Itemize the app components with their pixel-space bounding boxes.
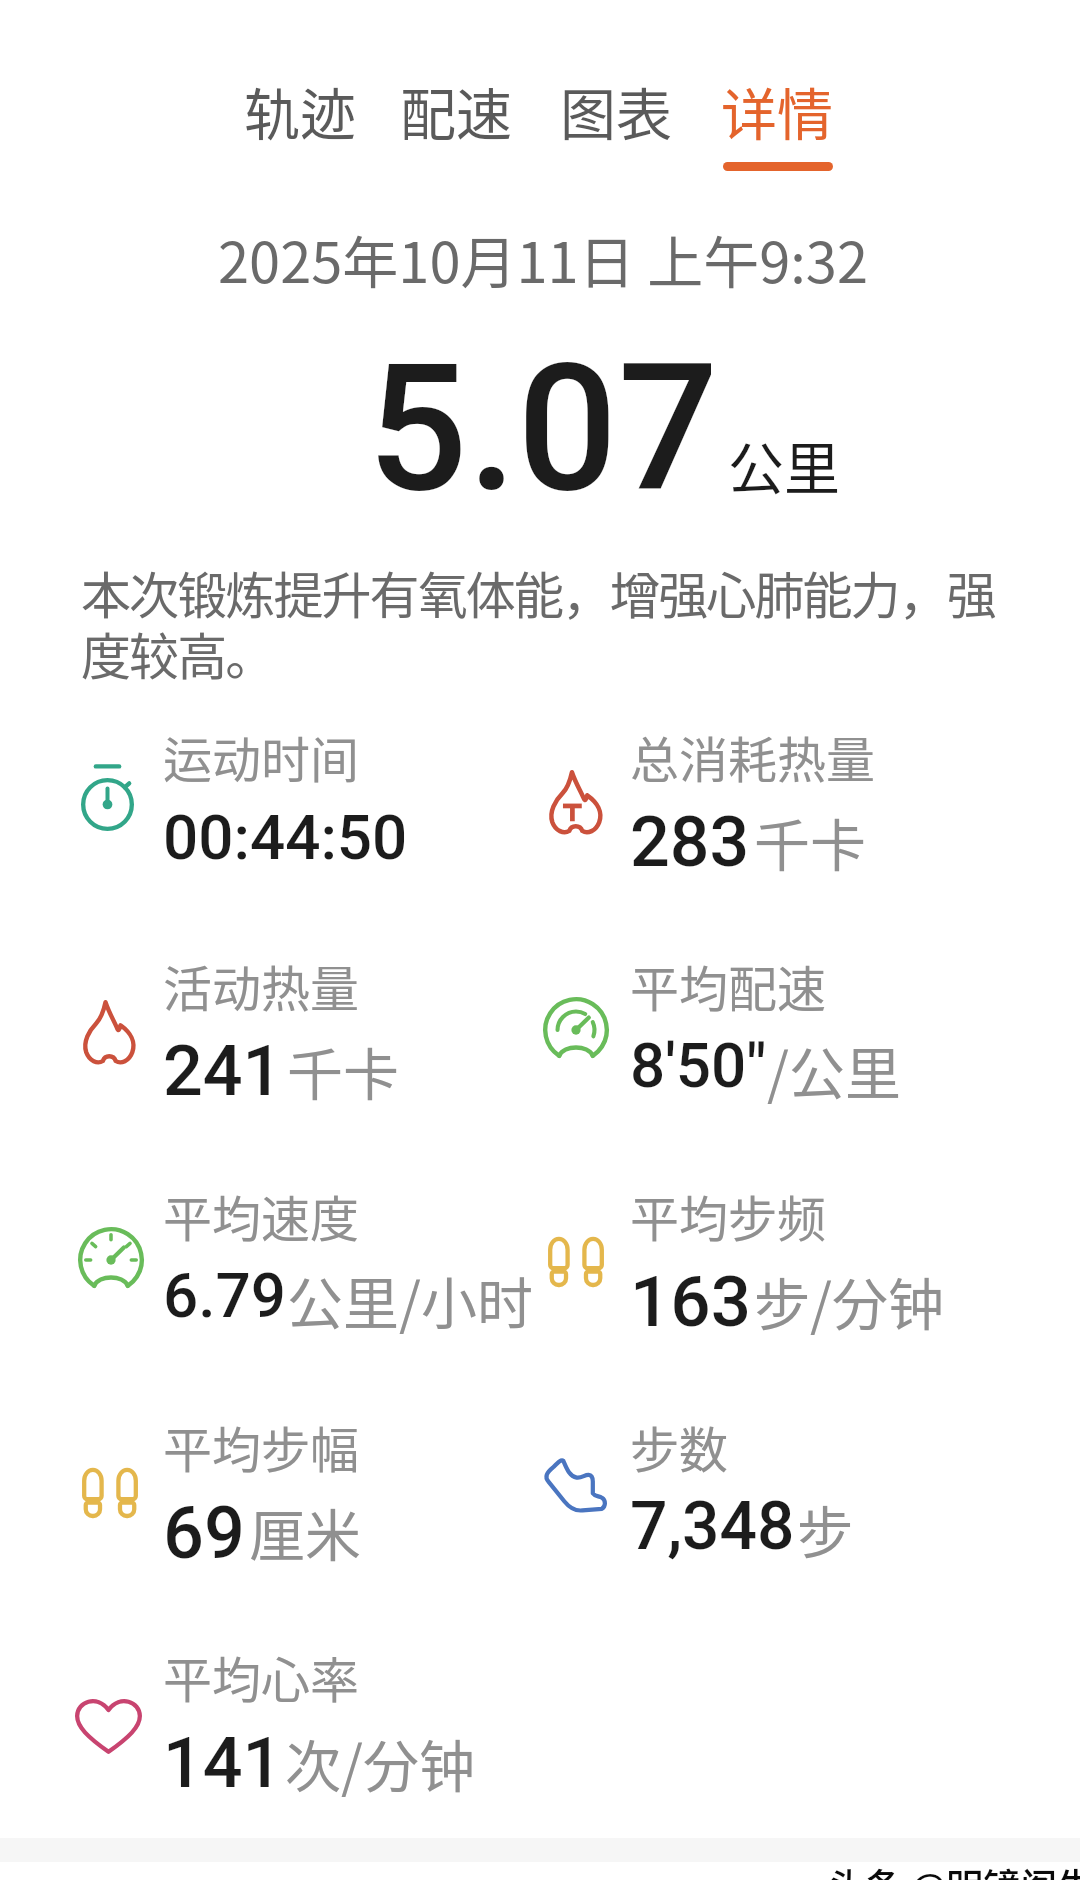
staticText: 步/分钟: [754, 1260, 944, 1341]
button[interactable]: 配速: [386, 56, 523, 185]
staticText: 总消耗热量: [630, 721, 876, 792]
staticText: 步: [797, 1488, 853, 1569]
staticText: 163: [630, 1260, 752, 1343]
staticText: 本次锻炼提升有氧体能，增强心肺能力，强度较高。: [81, 556, 1011, 689]
staticText: 241: [163, 1030, 283, 1112]
other: 步数: [543, 1458, 608, 1516]
staticText: 69: [163, 1491, 245, 1575]
staticText: 千卡: [287, 1030, 399, 1111]
staticText: 平均配速: [630, 950, 827, 1021]
staticText: 活动热量: [163, 950, 360, 1021]
other: 平均速度: [78, 1227, 144, 1286]
other: 活动热量: [80, 999, 138, 1066]
button[interactable]: 轨迹: [230, 56, 367, 185]
other: 平均配速: [543, 997, 609, 1056]
staticText: 8'50": [630, 1029, 767, 1102]
staticText: 283: [630, 801, 750, 883]
staticText: 7,348: [630, 1488, 795, 1565]
staticText: 00:44:50: [163, 801, 408, 874]
button[interactable]: 详情: [707, 56, 844, 185]
button[interactable]: 图表: [546, 56, 683, 185]
staticText: 2025年10月11日 上午9:32: [218, 218, 868, 299]
other: 运动时间: [81, 764, 134, 831]
staticText: /公里: [767, 1029, 901, 1110]
staticText: 运动时间: [163, 721, 360, 792]
staticText: 次/分钟: [285, 1722, 475, 1803]
staticText: 图表: [560, 70, 672, 151]
other: 总消耗热量: [546, 769, 605, 836]
staticText: 公里/小时: [287, 1259, 533, 1340]
staticText: 轨迹: [244, 70, 356, 151]
staticText: 详情: [721, 70, 833, 151]
staticText: 公里: [728, 424, 840, 505]
staticText: 头条 @明镜阁生活: [828, 1858, 1080, 1880]
staticText: 平均步幅: [163, 1411, 360, 1482]
staticText: 141: [163, 1722, 283, 1804]
other: 平均心率: [75, 1695, 142, 1754]
other: 平均步频: [547, 1234, 605, 1291]
staticText: 平均心率: [163, 1641, 360, 1712]
staticText: 千卡: [754, 801, 866, 882]
staticText: 平均速度: [163, 1180, 360, 1251]
staticText: 配速: [400, 70, 512, 151]
staticText: 5.07: [367, 325, 719, 532]
staticText: 步数: [630, 1411, 729, 1482]
staticText: 厘米: [249, 1491, 361, 1572]
staticText: 平均步频: [630, 1180, 827, 1251]
other: 平均步幅: [81, 1465, 139, 1522]
staticText: 6.79: [163, 1259, 287, 1332]
